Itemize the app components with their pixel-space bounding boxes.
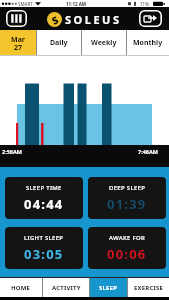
staticText: DEEP SLEEP xyxy=(109,184,146,192)
button[interactable]: EXERCISE xyxy=(128,278,169,297)
button[interactable]: AWAKE FOR xyxy=(88,227,166,269)
staticText: AWAKE FOR xyxy=(109,234,146,242)
staticText: HOME xyxy=(11,284,31,292)
staticText: SLEEP xyxy=(99,284,118,292)
button[interactable]: Weekly xyxy=(82,30,126,56)
staticText: ACTIVITY xyxy=(52,284,81,292)
staticText: Weekly xyxy=(91,38,117,48)
staticText: LIGHT SLEEP xyxy=(24,234,64,242)
button[interactable]: SLEEP TIME xyxy=(5,177,83,219)
button[interactable]: Mar 27 xyxy=(0,30,36,56)
staticText: Mar 27 xyxy=(11,35,25,52)
button[interactable]: Monthly xyxy=(127,30,169,56)
staticText: Monthly xyxy=(133,38,163,48)
button[interactable] xyxy=(6,10,27,27)
staticText: SLEEP TIME xyxy=(26,184,62,192)
staticText: 11:12 AM xyxy=(66,1,87,7)
button[interactable]: LIGHT SLEEP xyxy=(5,227,83,269)
staticText: SOLEUS xyxy=(65,12,122,27)
staticText: 03:05 xyxy=(24,245,64,263)
staticText: SMART xyxy=(18,1,33,7)
staticText: 7:46AM xyxy=(138,148,158,155)
staticText: 04:44 xyxy=(24,195,64,213)
staticText: 71% xyxy=(140,1,149,7)
button[interactable]: ACTIVITY xyxy=(43,278,89,297)
staticText: 2:56AM xyxy=(2,148,22,155)
staticText: Daily xyxy=(50,38,68,48)
staticText: S xyxy=(49,12,61,28)
button[interactable]: SLEEP xyxy=(90,278,127,297)
button[interactable]: HOME xyxy=(0,278,42,297)
staticText: 00:06 xyxy=(107,245,147,263)
staticText: 01:39 xyxy=(107,195,147,213)
staticText: EXERCISE xyxy=(134,284,164,292)
button[interactable] xyxy=(139,10,162,27)
button[interactable]: DEEP SLEEP xyxy=(88,177,166,219)
button[interactable]: Daily xyxy=(37,30,81,56)
